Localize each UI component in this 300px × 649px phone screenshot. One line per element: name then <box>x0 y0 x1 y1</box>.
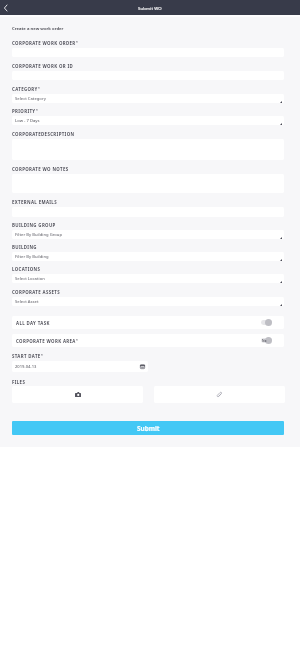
staticText: * <box>76 338 78 343</box>
button[interactable]: ALL DAY TASK <box>12 316 284 329</box>
staticText: ALL DAY TASK <box>16 320 50 326</box>
button[interactable]: Take photo <box>12 386 143 403</box>
staticText: CORPORATE WORK AREA <box>16 338 76 344</box>
staticText: Low - 7 Days <box>15 118 40 124</box>
staticText: Select Category <box>15 96 46 102</box>
staticText: Submit <box>137 424 160 433</box>
staticText: 2019-04-13 <box>15 364 37 370</box>
staticText: * <box>76 40 78 45</box>
staticText: Filter By Building Group <box>15 232 63 238</box>
staticText: BUILDING GROUP <box>12 222 56 228</box>
button[interactable]: Filter By Building <box>12 252 284 261</box>
button[interactable]: Back <box>0 0 12 15</box>
staticText: CATEGORY <box>12 86 38 92</box>
staticText: * <box>36 108 38 113</box>
staticText: Select Location <box>15 276 45 282</box>
staticText: Submit WO <box>138 5 162 11</box>
staticText: CORPORATE WORK OR ID <box>12 63 74 69</box>
staticText: Filter By Building <box>15 254 49 260</box>
staticText: No <box>262 339 267 343</box>
staticText: Select Asset <box>15 299 39 305</box>
button[interactable]: Low - 7 Days <box>12 116 284 125</box>
staticText: PRIORITY <box>12 108 36 114</box>
button[interactable]: Submit <box>12 421 284 435</box>
staticText: CORPORATEDESCRIPTION <box>12 131 75 137</box>
button[interactable]: Attach file <box>154 386 285 403</box>
staticText: CORPORATE ASSETS <box>12 289 60 295</box>
staticText: FILES <box>12 379 26 385</box>
staticText: BUILDING <box>12 244 37 250</box>
button[interactable]: Select Location <box>12 274 284 283</box>
button[interactable]: Filter By Building Group <box>12 230 284 239</box>
staticText: CORPORATE WORK ORDER <box>12 40 76 46</box>
staticText: * <box>38 86 40 91</box>
staticText: LOCATIONS <box>12 266 41 272</box>
button[interactable]: CORPORATE WORK AREA <box>12 334 284 347</box>
staticText: START DATE <box>12 353 41 359</box>
button[interactable]: Select Category <box>12 94 284 103</box>
button[interactable]: Select Asset <box>12 297 284 306</box>
staticText: Create a new work order <box>12 26 64 32</box>
staticText: * <box>41 353 43 358</box>
staticText: EXTERNAL EMAILS <box>12 199 57 205</box>
staticText: CORPORATE WO NOTES <box>12 166 69 172</box>
button[interactable]: 2019-04-13 <box>12 361 148 372</box>
